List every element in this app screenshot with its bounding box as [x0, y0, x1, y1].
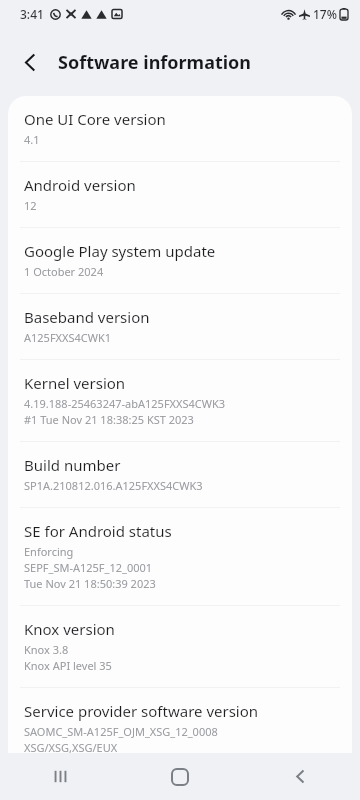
button[interactable]: Android version: [8, 162, 352, 227]
staticText: Google Play system update: [24, 241, 216, 261]
staticText: Android version: [24, 175, 136, 195]
staticText: Knox version: [24, 619, 115, 639]
button[interactable]: SE for Android status: [8, 508, 352, 605]
staticText: One UI Core version: [24, 109, 166, 129]
staticText: SAOMC_SM-A125F_OJM_XSG_12_0008: [24, 724, 218, 739]
button[interactable]: Back: [8, 40, 52, 84]
staticText: XSG/XSG,XSG/EUX: [24, 740, 118, 755]
staticText: 4.19.188-25463247-abA125FXXS4CWK3: [24, 396, 226, 411]
button[interactable]: One UI Core version: [8, 96, 352, 161]
staticText: A125FXXS4CWK1: [24, 330, 112, 345]
button[interactable]: Knox version: [8, 606, 352, 687]
staticText: Service provider software version: [24, 701, 259, 721]
button[interactable]: Security software version: [8, 770, 352, 800]
staticText: #1 Tue Nov 21 18:38:25 KST 2023: [24, 412, 194, 427]
staticText: Software information: [58, 50, 252, 75]
staticText: Baseband version: [24, 307, 150, 327]
button[interactable]: Build number: [8, 442, 352, 507]
button[interactable]: Baseband version: [8, 294, 352, 359]
staticText: SEPF_SM-A125F_12_0001: [24, 560, 153, 575]
staticText: SE for Android status: [24, 521, 172, 541]
staticText: Knox 3.8: [24, 642, 69, 657]
staticText: Tue Nov 21 18:50:39 2023: [24, 576, 156, 591]
staticText: 17%: [313, 6, 337, 22]
staticText: SP1A.210812.016.A125FXXS4CWK3: [24, 478, 203, 493]
staticText: 3:41: [20, 6, 44, 22]
button[interactable]: Recent apps: [0, 753, 120, 800]
staticText: Security software version: [24, 783, 202, 787]
staticText: Enforcing: [24, 544, 74, 559]
staticText: Kernel version: [24, 373, 126, 393]
button[interactable]: Home: [120, 753, 240, 800]
button[interactable]: Google Play system update: [8, 228, 352, 293]
staticText: 12: [24, 198, 37, 213]
button[interactable]: Kernel version: [8, 360, 352, 441]
staticText: 4.1: [24, 132, 40, 147]
staticText: Build number: [24, 455, 121, 475]
button[interactable]: Service provider software version: [8, 688, 352, 769]
staticText: 1 October 2024: [24, 264, 104, 279]
staticText: Knox API level 35: [24, 658, 112, 673]
button[interactable]: Back: [240, 753, 360, 800]
